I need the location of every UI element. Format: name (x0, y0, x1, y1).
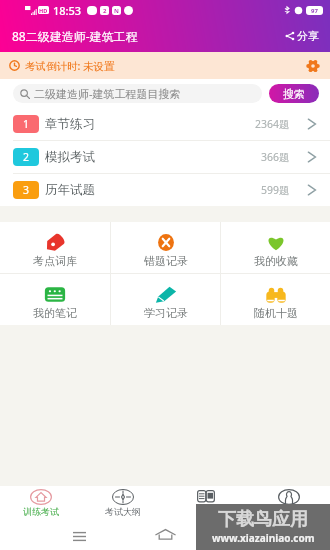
staticText: N (114, 7, 119, 15)
button[interactable]: 3 (0, 174, 330, 206)
staticText: 随机十题 (254, 306, 298, 320)
staticText: 2 (23, 150, 30, 164)
button[interactable]: 错题记录 (111, 222, 220, 273)
button[interactable]: 分享 (285, 25, 319, 47)
button[interactable]: 2 (0, 141, 330, 173)
button[interactable]: 二级建造师-建筑工程题目搜索 (13, 84, 262, 103)
button[interactable]: 训练考试 (0, 486, 82, 520)
button[interactable]: 考试大纲 (82, 486, 164, 520)
button[interactable]: 学习记录 (111, 274, 220, 325)
staticText: 训练考试 (23, 506, 59, 517)
staticText: HD (39, 7, 48, 14)
button[interactable]: 我的收藏 (221, 222, 330, 273)
staticText: 我的笔记 (33, 306, 77, 320)
staticText: 历年试题 (45, 182, 95, 198)
staticText: 97 (311, 7, 318, 15)
staticText: 88二级建造师-建筑工程 (12, 28, 138, 44)
staticText: 下载鸟应用 (218, 508, 308, 531)
staticText: 考试倒计时: 未设置 (25, 59, 115, 73)
button[interactable]: 我的笔记 (0, 274, 110, 325)
staticText: 考试大纲 (105, 506, 141, 517)
staticText: 2364题 (255, 117, 290, 131)
staticText: 3 (23, 183, 30, 197)
staticText: 二级建造师-建筑工程题目搜索 (34, 86, 181, 101)
staticText: 搜索 (283, 87, 305, 101)
button[interactable]: 1 (0, 108, 330, 140)
staticText: 学习记录 (144, 306, 188, 320)
staticText: 模拟考试 (45, 149, 95, 165)
button[interactable]: 题库 (164, 486, 247, 520)
button[interactable]: 随机十题 (221, 274, 330, 325)
staticText: 错题记录 (144, 254, 188, 268)
staticText: 18:53 (53, 3, 82, 18)
staticText: 考点词库 (33, 254, 77, 268)
staticText: 1 (23, 117, 30, 131)
button[interactable]: Settings (306, 59, 320, 73)
staticText: 章节练习 (45, 116, 95, 132)
button[interactable]: 考点词库 (0, 222, 110, 273)
staticText: 分享 (297, 29, 319, 43)
staticText: 599题 (261, 183, 290, 197)
button[interactable]: 搜索 (269, 84, 319, 103)
staticText: 我的 (280, 506, 298, 517)
staticText: www.xiazainiao.com (212, 531, 315, 545)
staticText: 2 (103, 7, 107, 15)
button[interactable]: 我的 (247, 486, 330, 520)
staticText: 我的收藏 (254, 254, 298, 268)
staticText: 366题 (261, 150, 290, 164)
